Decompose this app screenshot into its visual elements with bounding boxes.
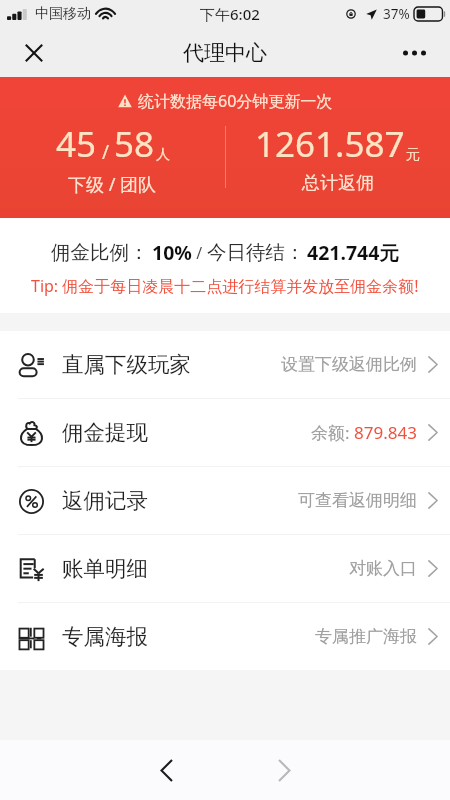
staticText: 直属下级玩家 xyxy=(62,351,191,378)
staticText: 58 xyxy=(114,120,155,168)
staticText: 佣金比例： xyxy=(51,240,149,265)
staticText: 37% xyxy=(383,5,410,23)
staticText: 45 xyxy=(56,120,97,168)
button[interactable]: 返佣记录 xyxy=(0,467,450,534)
staticText: 元 xyxy=(406,146,420,164)
staticText: 下午6:02 xyxy=(200,4,260,24)
staticText: / xyxy=(192,242,207,264)
staticText: / xyxy=(97,139,114,165)
staticText: 人 xyxy=(156,146,170,164)
staticText: 今日待结： xyxy=(207,240,305,265)
staticText: 879.843 xyxy=(354,421,417,444)
staticText: 中国移动 xyxy=(35,5,91,23)
staticText: 总计返佣 xyxy=(302,172,374,195)
staticText: 设置下级返佣比例 xyxy=(281,354,417,375)
button[interactable]: 佣金提现 xyxy=(0,399,450,466)
staticText: 对账入口 xyxy=(349,558,417,579)
button[interactable]: More options xyxy=(390,29,438,77)
button[interactable]: 账单明细 xyxy=(0,535,450,602)
button[interactable]: Forward xyxy=(256,742,312,798)
staticText: 421.744元 xyxy=(307,239,399,266)
staticText: 可查看返佣明细 xyxy=(298,490,417,511)
staticText: 返佣记录 xyxy=(62,487,148,514)
button[interactable]: 直属下级玩家 xyxy=(0,331,450,398)
staticText: Tip: 佣金于每日凌晨十二点进行结算并发放至佣金余额! xyxy=(31,275,419,297)
button[interactable]: Close xyxy=(10,29,58,77)
staticText: 余额: xyxy=(311,421,354,444)
staticText: 下级 / 团队 xyxy=(68,172,157,197)
staticText: 专属海报 xyxy=(62,623,148,650)
staticText: 佣金提现 xyxy=(62,419,148,446)
button[interactable]: Back xyxy=(138,742,194,798)
staticText: 账单明细 xyxy=(62,555,148,582)
button[interactable]: 专属海报 xyxy=(0,603,450,670)
staticText: 代理中心 xyxy=(183,40,267,66)
staticText: 专属推广海报 xyxy=(315,626,417,647)
staticText: 1261.587 xyxy=(255,120,405,168)
staticText: 10% xyxy=(152,239,192,266)
staticText: 统计数据每60分钟更新一次 xyxy=(138,90,333,112)
